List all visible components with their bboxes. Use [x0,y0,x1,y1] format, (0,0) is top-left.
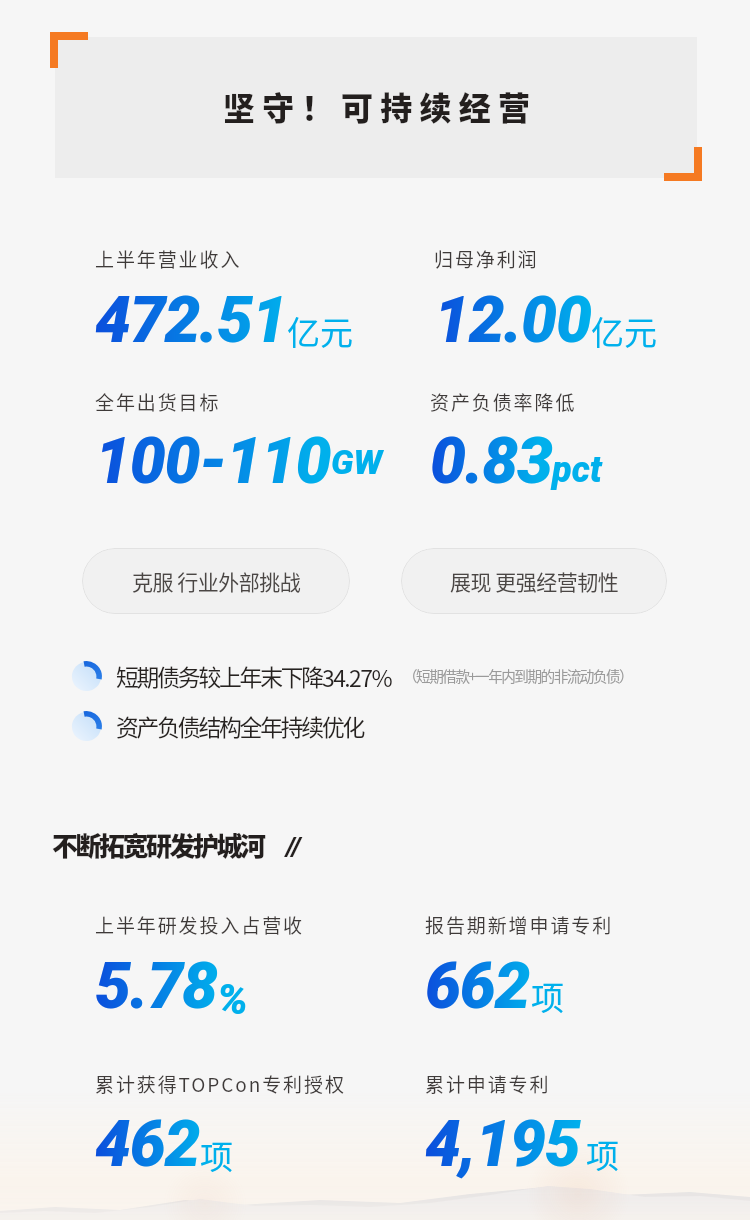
staticText: 100-110 [95,424,331,499]
staticText: 4,195 [425,1107,580,1182]
staticText: 项 [586,1130,619,1178]
staticText: 累计申请专利 [425,1070,551,1098]
staticText: 472.51 [95,283,287,358]
staticText: 0.83 [430,424,552,499]
staticText: 展现 更强经营韧性 [450,566,619,596]
staticText: （短期借款+一年内到期的非流动负债） [403,665,633,686]
staticText: 不断拓宽研发护城河 [52,826,264,864]
staticText: 亿元 [287,307,353,355]
staticText: 全年出货目标 [95,388,221,416]
button[interactable]: 克服 行业外部挑战 [82,548,350,614]
staticText: 累计获得TOPCon专利授权 [95,1070,346,1098]
staticText: 12.00 [434,283,591,358]
staticText: // [286,831,301,861]
staticText: 亿元 [591,307,657,355]
staticText: 资产负债率降低 [430,388,577,416]
staticText: pct [552,449,602,491]
staticText: GW [331,442,383,482]
staticText: 项 [200,1131,233,1179]
staticText: 归母净利润 [434,245,539,273]
staticText: 上半年研发投入占营收 [95,911,305,939]
staticText: 坚守！可持续经营 [223,83,538,129]
staticText: 34.27% [322,660,392,693]
staticText: 上半年营业收入 [95,245,242,273]
staticText: 662 [425,949,530,1024]
staticText: 462 [95,1107,200,1182]
staticText: 项 [531,972,564,1020]
staticText: % [217,974,248,1024]
staticText: 短期债务较上年末下降 [116,660,322,693]
staticText: 克服 行业外部挑战 [132,566,301,596]
staticText: 5.78 [95,949,217,1024]
staticText: 资产负债结构全年持续优化 [116,710,364,743]
button[interactable]: 展现 更强经营韧性 [401,548,667,614]
staticText: 报告期新增申请专利 [425,911,614,939]
